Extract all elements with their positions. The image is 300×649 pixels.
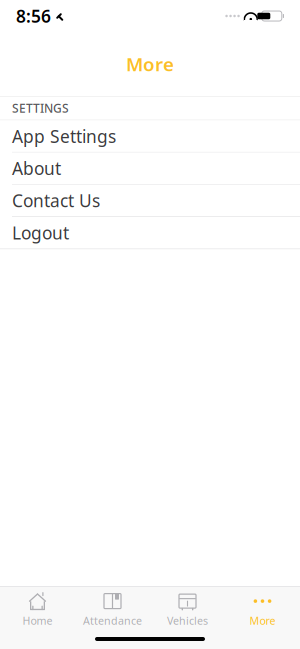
button[interactable]: App Settings [0,120,300,153]
button[interactable]: Logout [0,217,300,249]
button[interactable]: Contact Us [0,185,300,217]
button[interactable]: Attendance [75,586,150,628]
staticText: More [126,52,174,76]
staticText: 8:56 [16,4,51,27]
staticText: Logout [12,221,69,244]
button[interactable]: About [0,153,300,185]
staticText: More [249,614,275,628]
staticText: About [12,157,61,180]
staticText: Home [22,614,52,628]
staticText: SETTINGS [12,100,69,116]
staticText: Attendance [83,614,142,628]
button[interactable]: Home [0,586,75,628]
button[interactable]: Vehicles [150,586,225,628]
staticText: App Settings [12,125,116,148]
staticText: Contact Us [12,189,100,212]
button[interactable]: More [225,586,300,628]
staticText: Vehicles [167,614,208,628]
